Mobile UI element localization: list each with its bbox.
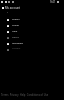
button[interactable]: Offers	[0, 35, 64, 41]
staticText: Wallet	[12, 23, 19, 26]
staticText: Account	[12, 47, 21, 50]
button[interactable]: Messages	[0, 41, 64, 47]
button[interactable]: Terms Privacy Help Conditions of Use	[0, 93, 64, 97]
button[interactable]: Wallet	[0, 23, 64, 29]
staticText: Help	[12, 29, 18, 32]
button[interactable]: Orders	[0, 17, 64, 23]
staticText: Terms Privacy Help Conditions of Use	[1, 93, 49, 97]
staticText: Offers	[12, 35, 19, 38]
button[interactable]: My account	[0, 6, 64, 9]
staticText: Messages	[12, 41, 24, 44]
button[interactable]: Help	[0, 29, 64, 35]
staticText: My account	[5, 6, 21, 9]
staticText: 9:41	[50, 0, 56, 4]
button[interactable]: Account	[0, 47, 64, 53]
staticText: Orders	[12, 17, 20, 20]
